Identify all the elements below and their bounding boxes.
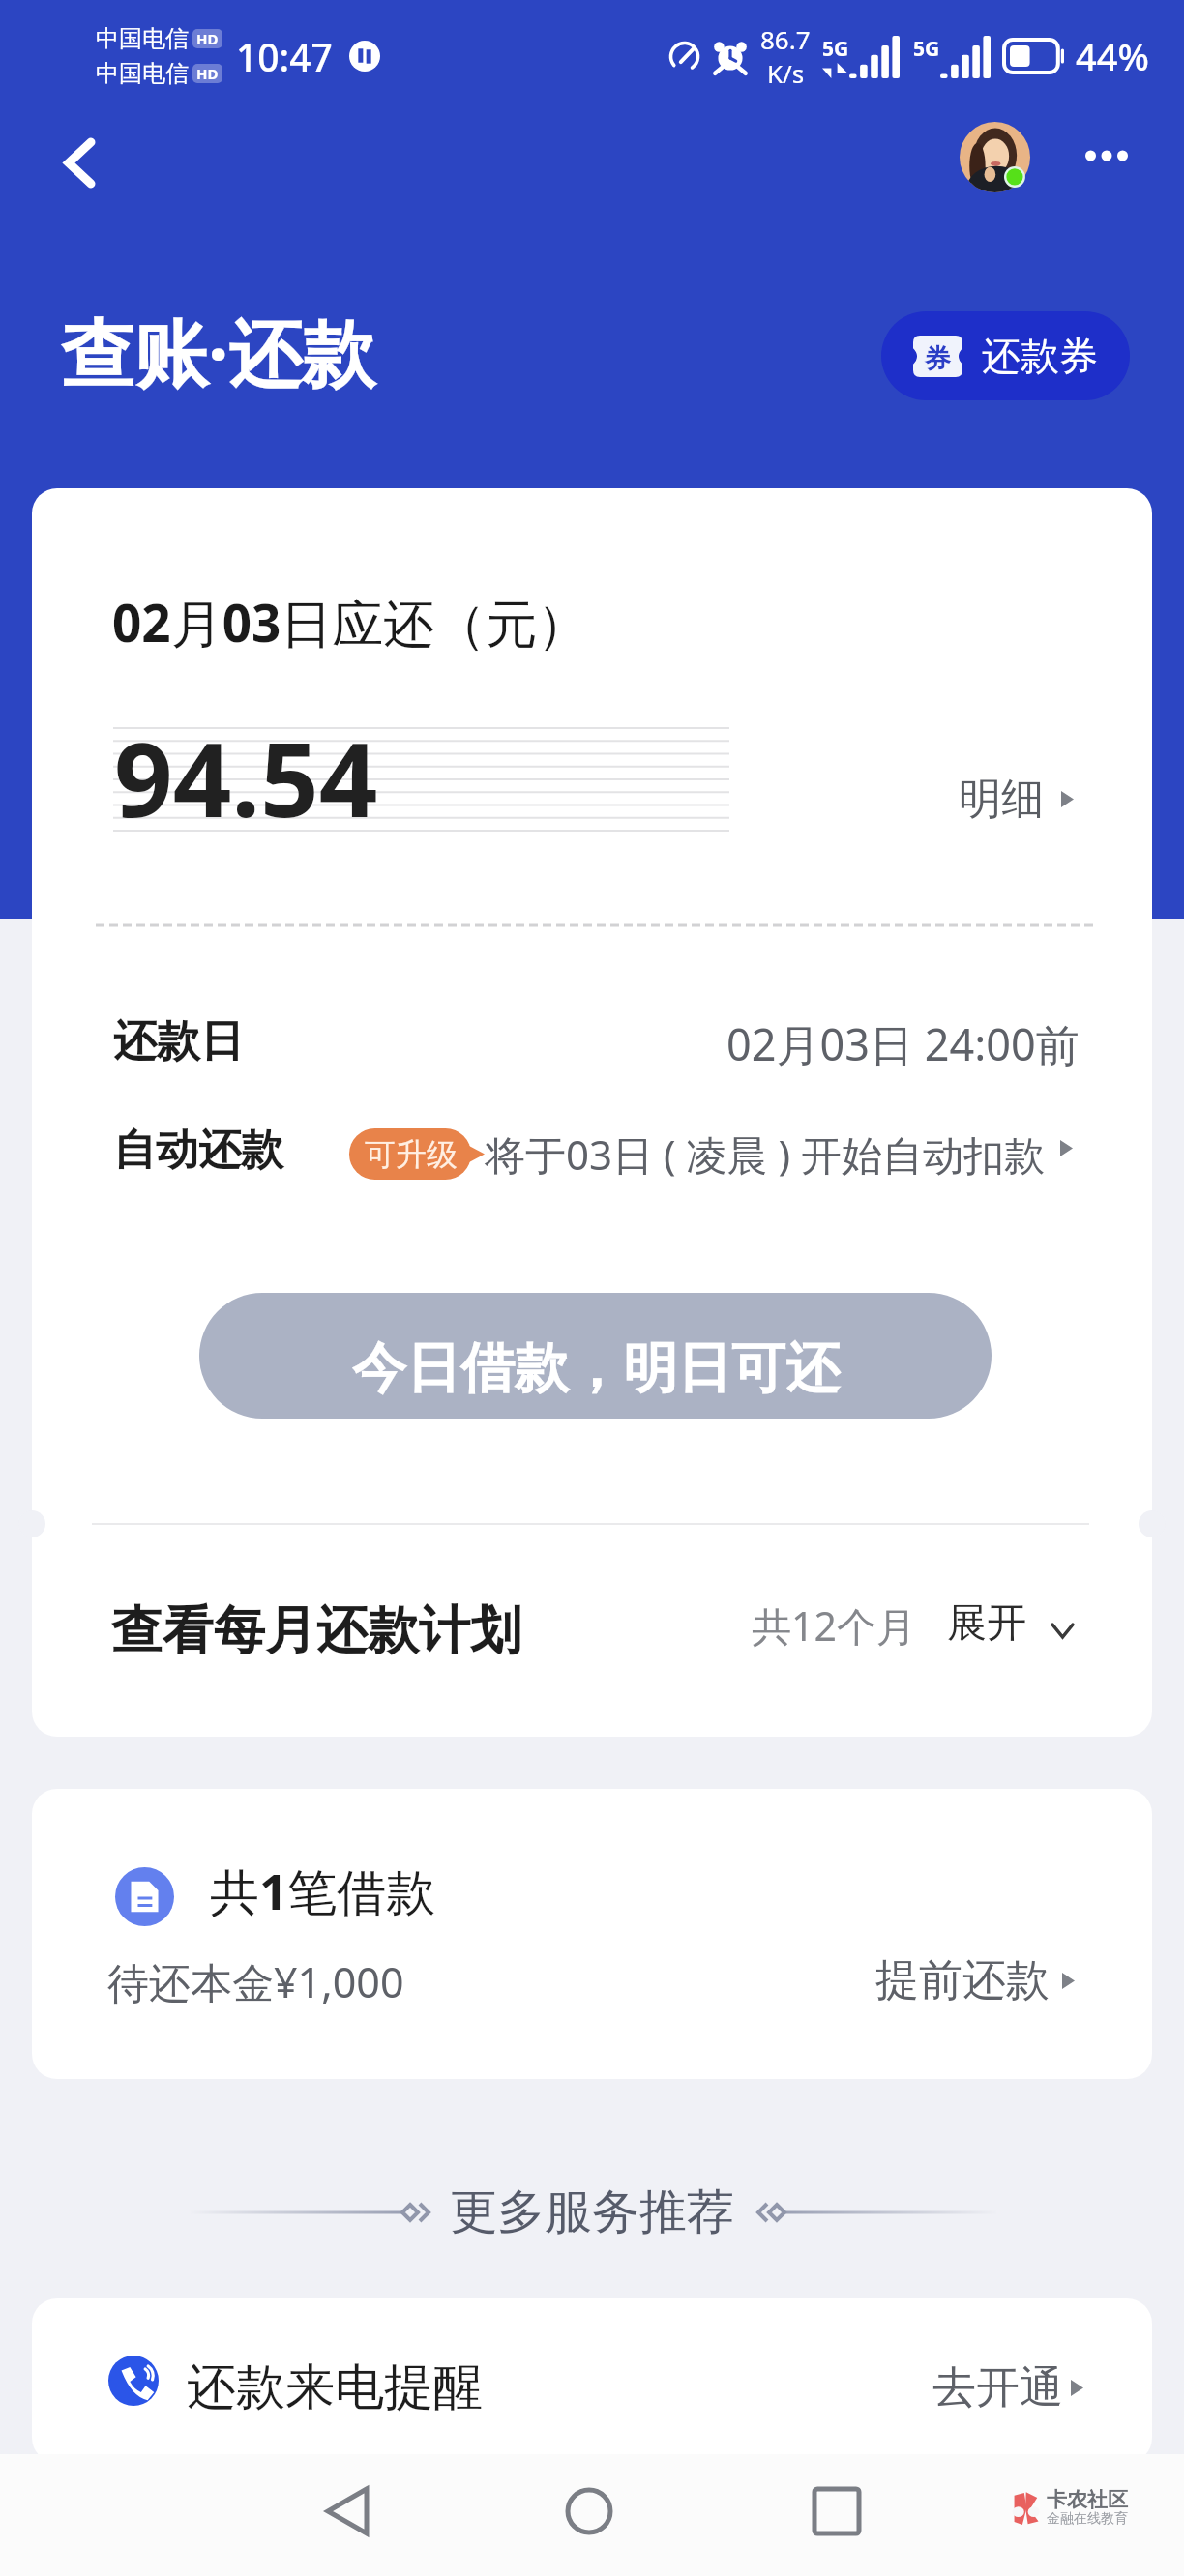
staticText: 还款日 [113, 1014, 244, 1069]
staticText: 86.7 [760, 22, 811, 56]
staticText: 02月03日应还（元） [112, 587, 589, 657]
staticText: HD [196, 64, 219, 83]
staticText: 共1笔借款 [210, 1857, 436, 1924]
staticText: 今日借款，明日可还 [352, 1334, 840, 1403]
staticText: HD [196, 29, 219, 48]
staticText: 5G [913, 35, 940, 63]
button[interactable]: 今日借款，明日可还 [199, 1293, 992, 1419]
button[interactable]: Back [41, 124, 118, 201]
staticText: 中国电信 [96, 24, 189, 53]
staticText: 还款来电提醒 [187, 2356, 483, 2418]
staticText: 查看每月还款计划 [111, 1598, 521, 1663]
staticText: 将于03日 ( 凌晨 ) 开始自动扣款 [485, 1127, 1045, 1182]
button[interactable]: 共1笔借款 [32, 1789, 1152, 2079]
staticText: 共12个月 [752, 1598, 916, 1653]
staticText: 可升级 [365, 1135, 458, 1174]
staticText: K/s [767, 56, 805, 90]
staticText: 44% [1076, 31, 1149, 81]
staticText: 中国电信 [96, 59, 189, 88]
staticText: 还款券 [982, 332, 1098, 380]
staticText: 明细 [959, 773, 1044, 826]
staticText: 自动还款 [113, 1124, 283, 1177]
staticText: 10:47 [236, 31, 333, 82]
staticText: 金融在线教育 [1047, 2510, 1128, 2528]
staticText: 提前还款 [875, 1953, 1050, 2008]
staticText: 待还本金¥1,000 [107, 1953, 404, 2010]
button[interactable]: Back [304, 2468, 391, 2555]
staticText: 更多服务推荐 [450, 2182, 734, 2242]
staticText: 02月03日 24:00前 [726, 1014, 1080, 1073]
staticText: 券 [925, 342, 951, 375]
staticText: 94.54 [114, 708, 378, 847]
staticText: 展开 [947, 1598, 1026, 1649]
button[interactable]: 还款来电提醒 [32, 2298, 1152, 2463]
staticText: 去开通 [932, 2360, 1063, 2415]
button[interactable]: More options [1069, 118, 1144, 193]
button[interactable]: Recent apps [793, 2468, 880, 2555]
staticText: 5G [822, 35, 849, 63]
button[interactable]: Home [546, 2468, 633, 2555]
button[interactable]: 明细 [959, 773, 1074, 826]
button[interactable]: 还款券 [881, 311, 1130, 400]
staticText: 查账·还款 [61, 302, 376, 402]
staticText: 卡农社区 [1047, 2487, 1128, 2512]
button[interactable]: Profile [951, 113, 1038, 200]
